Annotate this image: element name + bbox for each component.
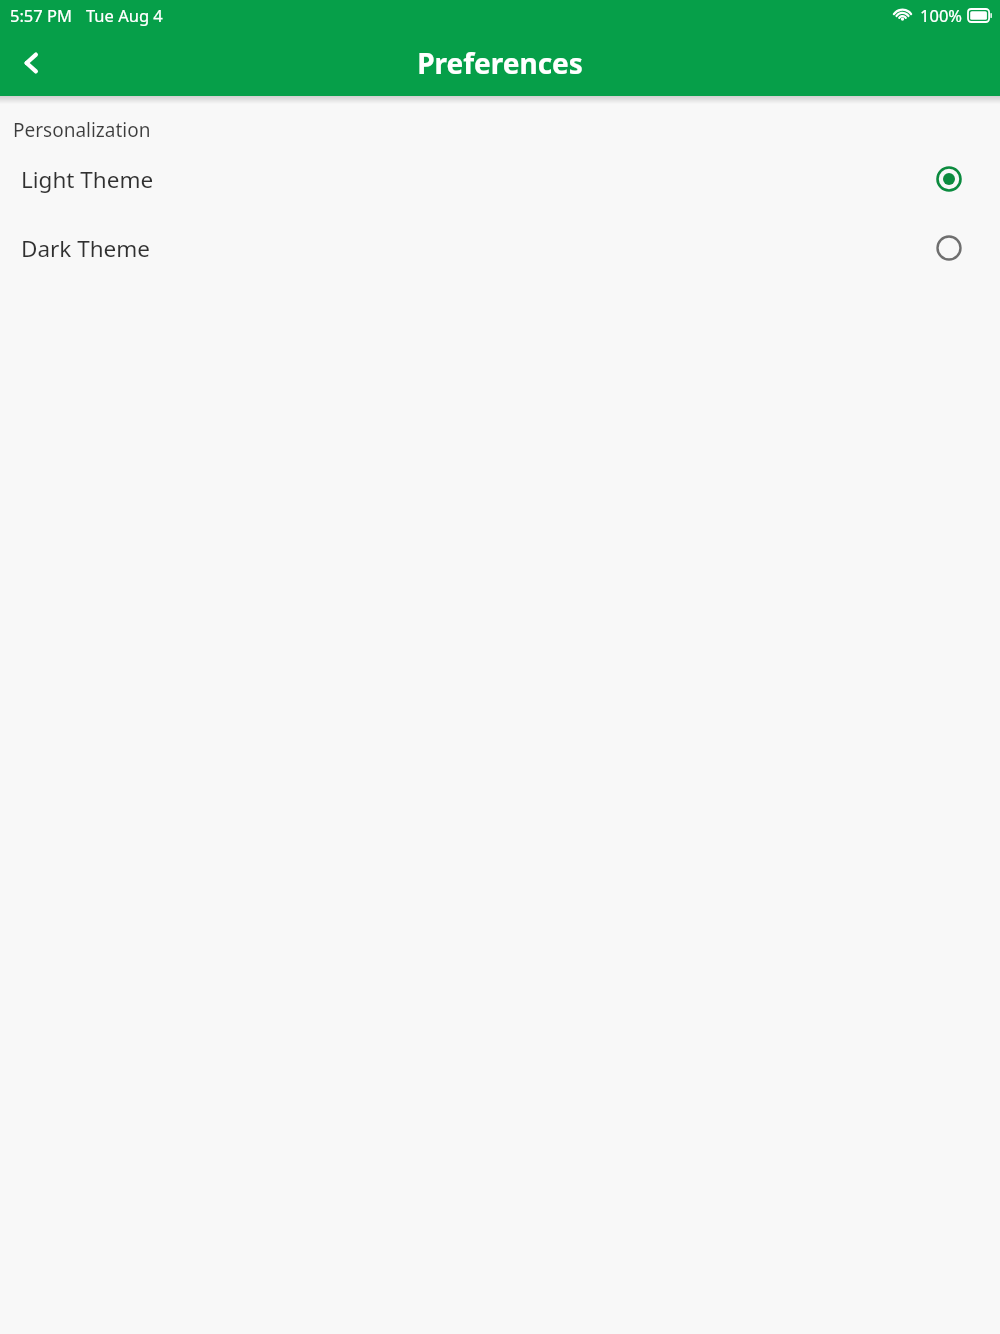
staticText: Light Theme: [21, 164, 154, 195]
staticText: Preferences: [0, 44, 1000, 82]
staticText: 100%: [920, 4, 963, 26]
staticText: Dark Theme: [21, 233, 151, 264]
button[interactable]: Dark Theme: [0, 224, 1000, 272]
button[interactable]: Light Theme: [0, 155, 1000, 203]
staticText: Tue Aug 4: [86, 4, 163, 26]
button[interactable]: Back: [0, 31, 64, 95]
staticText: Personalization: [13, 117, 151, 143]
staticText: 5:57 PM: [10, 4, 72, 26]
